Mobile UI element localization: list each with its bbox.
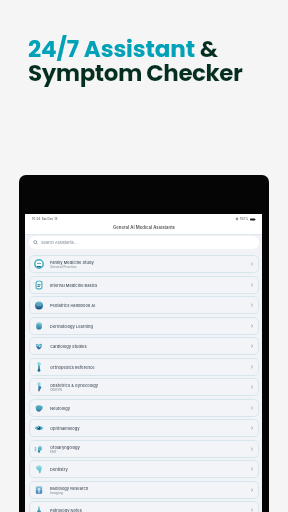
staticText: General Practice <box>50 265 77 269</box>
button[interactable]: Pediatrics Handbook AI <box>29 296 259 314</box>
staticText: 24/7 Assistant <box>28 33 195 65</box>
staticText: Family Medicine Study <box>50 260 94 265</box>
button[interactable]: Internal Medicine Basics <box>29 276 259 294</box>
staticText: Ophthalmology <box>50 426 80 431</box>
staticText: ENT <box>50 450 57 454</box>
staticText: Obstetrics & Gynecology <box>50 383 99 388</box>
staticText: Dentistry <box>50 467 68 472</box>
button[interactable]: Obstetrics & Gynecology <box>29 378 259 396</box>
staticText: Orthopedics Reference <box>50 365 95 370</box>
staticText: Neurology <box>50 406 71 411</box>
staticText: Pathology Notes <box>50 508 82 512</box>
staticText: OBGYN <box>50 388 63 392</box>
staticText: Pediatrics Handbook AI <box>50 303 96 308</box>
staticText: Internal Medicine Basics <box>50 283 98 288</box>
button[interactable]: Otolaryngology <box>29 440 259 458</box>
button[interactable]: Orthopedics Reference <box>29 358 259 376</box>
staticText: Cardiology Studies <box>50 344 87 349</box>
button[interactable]: Search Assistants... <box>29 236 259 249</box>
button[interactable]: Family Medicine Study <box>29 255 259 273</box>
staticText: Imaging <box>50 491 63 495</box>
button[interactable]: Neurology <box>29 399 259 417</box>
button[interactable]: Cardiology Studies <box>29 337 259 355</box>
button[interactable]: Radiology Research <box>29 481 259 499</box>
staticText: Otolaryngology <box>50 445 80 450</box>
button[interactable]: Dermatology Learning <box>29 317 259 335</box>
staticText: 100% <box>240 217 249 221</box>
staticText: Search Assistants... <box>41 240 78 245</box>
staticText: Dermatology Learning <box>50 324 93 329</box>
button[interactable]: Pathology Notes <box>29 501 259 512</box>
staticText: 10:34 Sat Dec 13 <box>32 217 58 221</box>
staticText: Radiology Research <box>50 486 89 491</box>
staticText: Symptom Checker <box>28 57 243 89</box>
button[interactable]: Ophthalmology <box>29 419 259 437</box>
button[interactable]: Dentistry <box>29 460 259 478</box>
staticText: General AI Medical Assistants <box>113 225 175 230</box>
staticText: & <box>195 33 219 65</box>
